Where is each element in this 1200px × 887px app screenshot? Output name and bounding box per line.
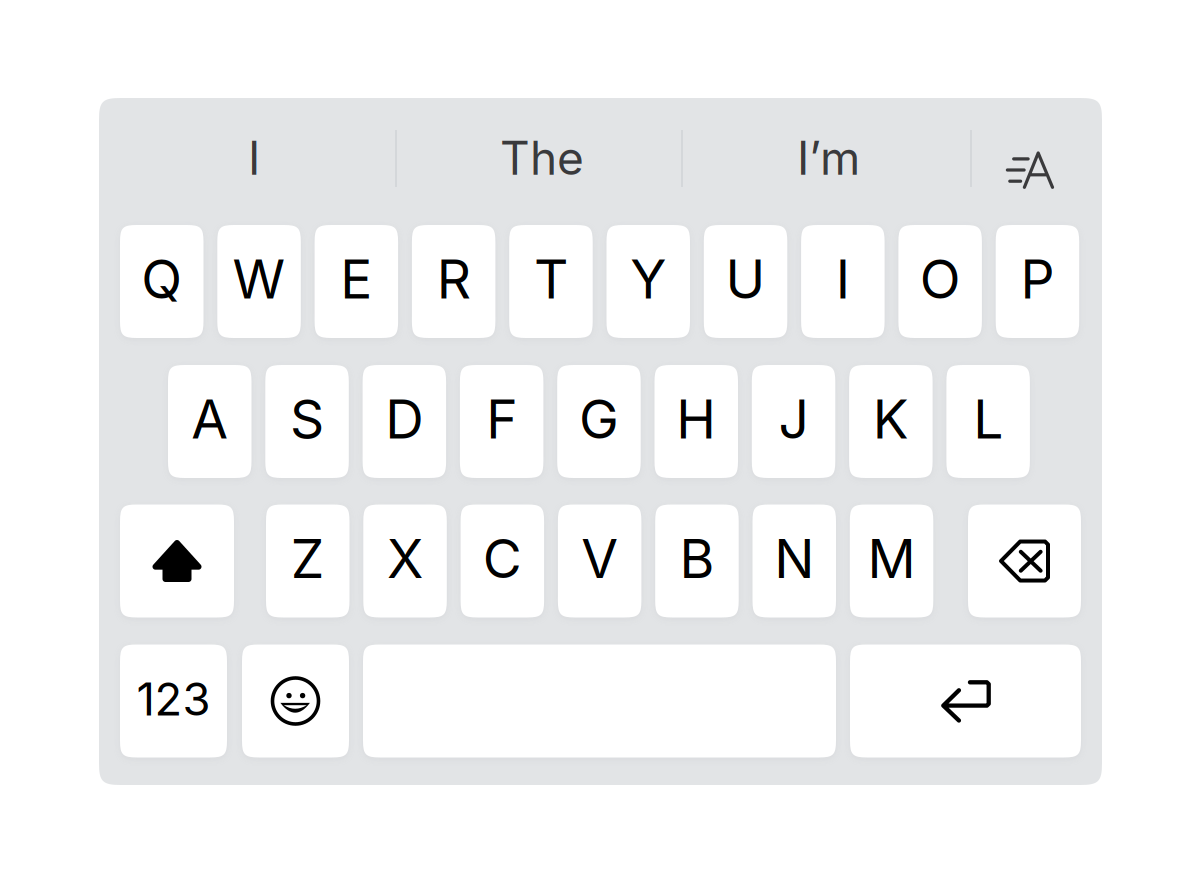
- button[interactable]: Delete: [968, 504, 1081, 617]
- button[interactable]: H: [654, 365, 738, 478]
- staticText: D: [385, 387, 423, 451]
- button[interactable]: E: [315, 225, 398, 338]
- staticText: I: [248, 130, 260, 186]
- staticText: P: [1020, 247, 1054, 311]
- button[interactable]: J: [752, 365, 835, 478]
- button[interactable]: I: [801, 225, 885, 338]
- button[interactable]: O: [898, 225, 982, 338]
- staticText: X: [387, 526, 423, 591]
- staticText: J: [778, 387, 808, 451]
- staticText: 123: [136, 672, 210, 726]
- button[interactable]: I: [106, 114, 402, 202]
- button[interactable]: M: [850, 504, 933, 617]
- staticText: Q: [141, 247, 182, 311]
- staticText: The: [500, 130, 584, 186]
- staticText: Z: [291, 526, 325, 591]
- staticText: R: [437, 247, 471, 311]
- staticText: E: [340, 247, 372, 311]
- staticText: O: [920, 247, 961, 311]
- staticText: G: [579, 387, 619, 451]
- button[interactable]: A: [168, 365, 251, 478]
- staticText: L: [973, 387, 1003, 451]
- staticText: I’m: [797, 130, 860, 186]
- button[interactable]: K: [849, 365, 933, 478]
- button[interactable]: X: [363, 504, 447, 617]
- staticText: F: [486, 387, 517, 451]
- button[interactable]: Numbers: [120, 644, 227, 757]
- staticText: H: [676, 387, 716, 451]
- button[interactable]: R: [412, 225, 495, 338]
- button[interactable]: Shift: [120, 504, 234, 617]
- staticText: M: [867, 526, 915, 591]
- staticText: V: [581, 526, 618, 591]
- button[interactable]: L: [946, 365, 1030, 478]
- button[interactable]: D: [363, 365, 446, 478]
- button[interactable]: W: [217, 225, 301, 338]
- button[interactable]: V: [558, 504, 641, 617]
- button[interactable]: C: [461, 504, 544, 617]
- staticText: T: [534, 247, 568, 311]
- staticText: W: [233, 247, 286, 311]
- staticText: Y: [630, 247, 666, 311]
- staticText: B: [679, 526, 714, 591]
- button[interactable]: Return: [850, 644, 1081, 757]
- button[interactable]: B: [655, 504, 739, 617]
- button[interactable]: S: [265, 365, 349, 478]
- button[interactable]: G: [557, 365, 641, 478]
- button[interactable]: U: [704, 225, 787, 338]
- button[interactable]: Writing Tools: [963, 126, 1094, 214]
- button[interactable]: Y: [606, 225, 690, 338]
- staticText: N: [774, 526, 814, 591]
- staticText: C: [483, 526, 522, 591]
- staticText: U: [725, 247, 765, 311]
- staticText: S: [290, 387, 324, 451]
- button[interactable]: Q: [120, 225, 203, 338]
- button[interactable]: Emoji: [242, 644, 349, 757]
- button[interactable]: N: [752, 504, 836, 617]
- button[interactable]: T: [509, 225, 593, 338]
- button[interactable]: The: [399, 114, 685, 202]
- button[interactable]: P: [996, 225, 1079, 338]
- button[interactable]: F: [460, 365, 543, 478]
- button[interactable]: I’m: [684, 114, 973, 202]
- staticText: K: [873, 387, 909, 451]
- staticText: I: [836, 247, 850, 311]
- staticText: A: [191, 387, 228, 451]
- button[interactable]: Z: [266, 504, 349, 617]
